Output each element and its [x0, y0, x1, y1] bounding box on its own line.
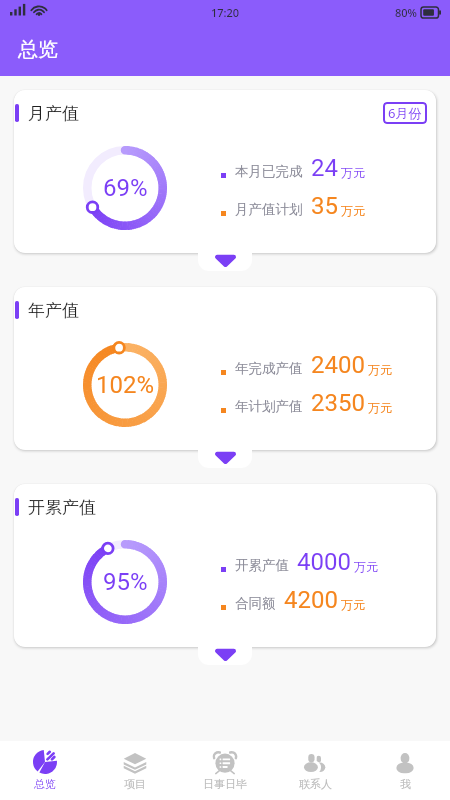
button[interactable]: 月产值 [14, 90, 436, 253]
staticText: 总览 [18, 37, 58, 62]
staticText: 年产值 [28, 300, 79, 321]
button[interactable]: 项目 [90, 741, 180, 800]
staticText: 24 [311, 154, 338, 182]
staticText: 项目 [124, 777, 146, 791]
staticText: 102% [96, 371, 155, 399]
staticText: 万元 [341, 597, 365, 612]
staticText: 2350 [311, 389, 365, 417]
staticText: 联系人 [299, 777, 332, 791]
staticText: 4200 [284, 586, 338, 614]
staticText: 月产值计划 [235, 201, 303, 218]
staticText: 万元 [341, 165, 365, 180]
staticText: 69% [103, 174, 148, 202]
staticText: 开累产值 [235, 557, 289, 574]
staticText: 80% [395, 5, 417, 20]
staticText: 万元 [341, 203, 365, 218]
staticText: 开累产值 [28, 497, 96, 518]
button[interactable]: 年产值 [14, 287, 436, 450]
button[interactable]: 展开 [198, 252, 252, 271]
staticText: 95% [103, 568, 148, 596]
button[interactable]: 展开 [198, 646, 252, 665]
button[interactable]: 开累产值 [14, 484, 436, 647]
staticText: 万元 [354, 559, 378, 574]
staticText: 35 [311, 192, 338, 220]
button[interactable]: 展开 [198, 449, 252, 468]
staticText: 4000 [297, 548, 351, 576]
staticText: 我 [400, 777, 411, 791]
staticText: 日事日毕 [203, 777, 247, 791]
staticText: 2400 [311, 351, 365, 379]
staticText: 月产值 [28, 103, 79, 124]
staticText: 年计划产值 [235, 398, 303, 415]
staticText: 总览 [34, 777, 56, 791]
button[interactable]: 日事日毕 [180, 741, 270, 800]
button[interactable]: 联系人 [270, 741, 360, 800]
button[interactable]: 6月份 [388, 102, 422, 124]
staticText: 6月份 [388, 104, 422, 122]
button[interactable]: 总览 [0, 741, 90, 800]
staticText: 17:20 [211, 5, 240, 20]
staticText: 合同额 [235, 595, 276, 612]
staticText: 年完成产值 [235, 360, 303, 377]
button[interactable]: 我 [360, 741, 450, 800]
staticText: 万元 [368, 400, 392, 415]
staticText: 万元 [368, 362, 392, 377]
staticText: 本月已完成 [235, 163, 303, 180]
